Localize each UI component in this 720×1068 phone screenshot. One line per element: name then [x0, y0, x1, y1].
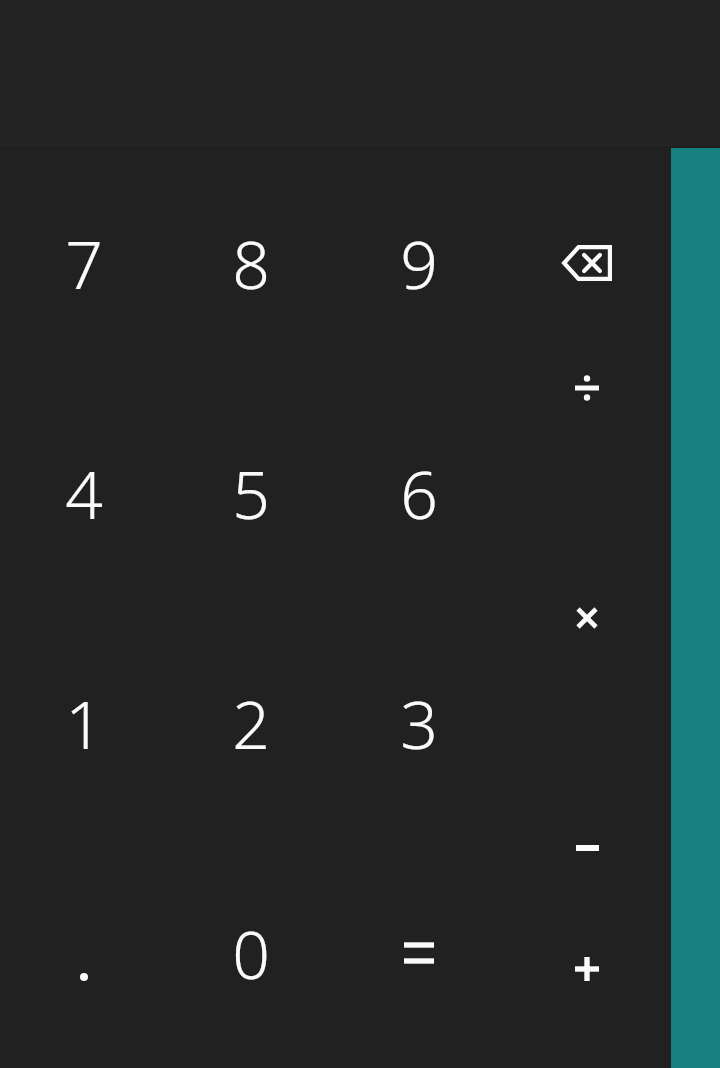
button[interactable]: 6 — [335, 378, 503, 608]
button[interactable]: Backspace — [503, 148, 671, 378]
staticText: 5 — [232, 448, 270, 538]
button[interactable]: 1 — [0, 608, 167, 838]
button[interactable]: Plus — [503, 919, 671, 1019]
button[interactable]: 9 — [335, 148, 503, 378]
staticText: 8 — [232, 218, 270, 308]
button[interactable]: 3 — [335, 608, 503, 838]
button[interactable]: 2 — [167, 608, 335, 838]
staticText: 0 — [232, 908, 270, 998]
button[interactable]: Decimal point — [0, 838, 167, 1068]
button[interactable]: Multiply — [503, 568, 671, 668]
button[interactable]: Equals — [335, 903, 503, 1003]
button[interactable]: 8 — [167, 148, 335, 378]
button[interactable]: 5 — [167, 378, 335, 608]
button[interactable]: Divide — [503, 338, 671, 438]
button[interactable]: 4 — [0, 378, 167, 608]
button[interactable]: Minus — [503, 798, 671, 898]
staticText: 2 — [232, 678, 270, 768]
staticText: 7 — [65, 218, 103, 308]
staticText: 9 — [400, 218, 438, 308]
staticText: 1 — [65, 678, 103, 768]
staticText: 3 — [400, 678, 438, 768]
staticText: 6 — [400, 448, 438, 538]
button[interactable]: 7 — [0, 148, 167, 378]
staticText: 4 — [65, 448, 103, 538]
button[interactable]: 0 — [167, 838, 335, 1068]
